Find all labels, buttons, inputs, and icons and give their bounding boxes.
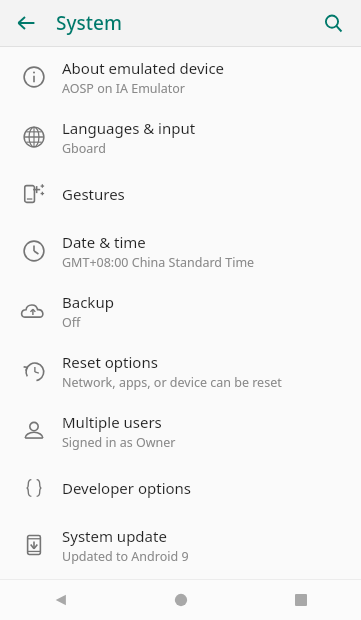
staticText: Off [62,314,81,331]
staticText: Signed in as Owner [62,434,176,451]
button[interactable]: Date & time [0,221,361,281]
button[interactable]: Back [0,580,121,620]
staticText: Languages & input [62,118,196,138]
button[interactable]: Gestures [0,167,361,221]
button[interactable]: Multiple users [0,401,361,461]
button[interactable]: Reset options [0,341,361,401]
staticText: GMT+08:00 China Standard Time [62,254,255,271]
staticText: System [56,10,122,36]
button[interactable]: Recent apps [241,580,361,620]
button[interactable]: About emulated device [0,47,361,107]
staticText: Developer options [62,478,192,498]
staticText: System update [62,526,167,546]
button[interactable]: Home [121,580,241,620]
staticText: Reset options [62,352,158,372]
staticText: Updated to Android 9 [62,548,189,565]
button[interactable]: Backup [0,281,361,341]
button[interactable]: Developer options [0,461,361,515]
staticText: Gboard [62,140,106,157]
staticText: Date & time [62,232,146,252]
staticText: AOSP on IA Emulator [62,80,186,97]
button[interactable]: Search [313,3,353,43]
staticText: Multiple users [62,412,162,432]
staticText: Network, apps, or device can be reset [62,374,282,391]
button[interactable]: Languages & input [0,107,361,167]
button[interactable]: Back [6,3,46,43]
staticText: Backup [62,292,114,312]
staticText: About emulated device [62,58,225,78]
button[interactable]: System update [0,515,361,575]
staticText: Gestures [62,184,125,204]
